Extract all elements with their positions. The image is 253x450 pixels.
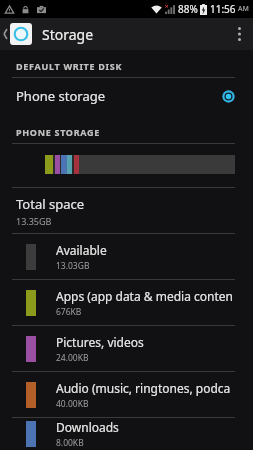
- staticText: 13.35GB: [16, 215, 52, 227]
- staticText: Apps (app data & media conten: [56, 288, 233, 304]
- staticText: Phone storage: [16, 87, 106, 105]
- button[interactable]: Available: [0, 234, 253, 279]
- staticText: Pictures, videos: [56, 334, 144, 350]
- staticText: 8.00KB: [56, 437, 84, 449]
- button[interactable]: Pictures, videos: [0, 326, 253, 371]
- staticText: Audio (music, ringtones, podca: [56, 380, 231, 396]
- staticText: 11:56: [210, 2, 236, 16]
- staticText: 40.00KB: [56, 398, 89, 410]
- staticText: Storage: [42, 25, 94, 44]
- button[interactable]: Total space: [0, 188, 253, 233]
- staticText: 88%: [178, 2, 198, 16]
- staticText: AM: [238, 4, 249, 14]
- staticText: 24.00KB: [56, 352, 89, 364]
- button[interactable]: Apps (app data & media conten: [0, 280, 253, 325]
- staticText: Total space: [16, 195, 84, 213]
- button[interactable]: Audio (music, ringtones, podca: [0, 372, 253, 417]
- staticText: DEFAULT WRITE DISK: [16, 60, 123, 72]
- button[interactable]: Downloads: [0, 418, 253, 450]
- button[interactable]: More options: [225, 18, 253, 50]
- staticText: Downloads: [56, 419, 119, 435]
- staticText: 676KB: [56, 306, 82, 318]
- button[interactable]: Phone storage: [0, 78, 253, 114]
- button[interactable]: Navigate up: [0, 23, 35, 45]
- staticText: PHONE STORAGE: [16, 126, 100, 138]
- staticText: 13.03GB: [56, 260, 90, 272]
- staticText: Available: [56, 242, 107, 258]
